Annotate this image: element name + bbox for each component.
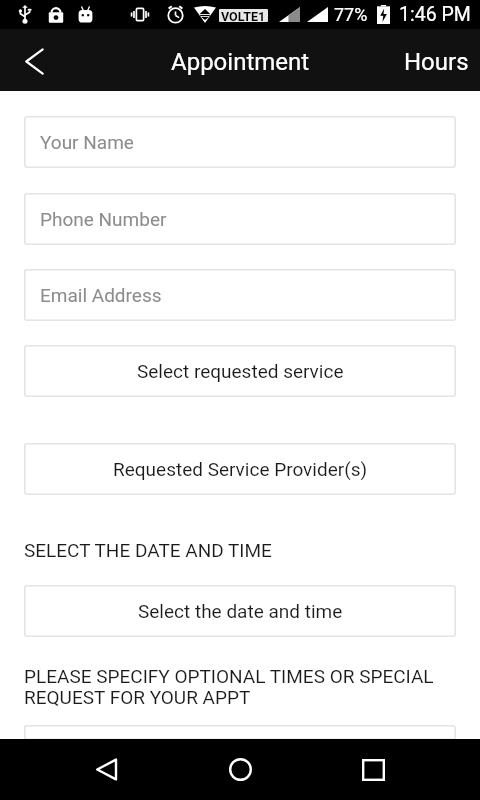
staticText: 77% xyxy=(334,4,368,25)
button[interactable]: Home xyxy=(210,739,271,800)
staticText: Requested Service Provider(s) xyxy=(113,458,368,480)
button[interactable]: Your Name xyxy=(24,116,456,168)
button[interactable] xyxy=(24,725,456,740)
button[interactable]: Select requested service xyxy=(24,345,456,397)
staticText: Select requested service xyxy=(137,360,344,382)
staticText: PLEASE SPECIFY OPTIONAL TIMES OR SPECIAL… xyxy=(24,665,434,708)
staticText: Hours xyxy=(404,48,469,76)
button[interactable]: Recent apps xyxy=(343,739,404,800)
button[interactable]: Requested Service Provider(s) xyxy=(24,443,456,495)
button[interactable]: Back xyxy=(6,33,62,89)
button[interactable]: Select the date and time xyxy=(24,585,456,637)
button[interactable]: Back xyxy=(76,739,137,800)
button[interactable]: Phone Number xyxy=(24,193,456,245)
staticText: 1:46 PM xyxy=(399,3,471,26)
staticText: Select the date and time xyxy=(138,600,343,622)
staticText: VOLTE1 xyxy=(221,9,266,22)
button[interactable]: Email Address xyxy=(24,269,456,321)
staticText: Email Address xyxy=(40,284,162,306)
staticText: Your Name xyxy=(40,131,134,153)
staticText: SELECT THE DATE AND TIME xyxy=(24,539,272,561)
button[interactable]: Hours xyxy=(386,29,480,91)
staticText: Phone Number xyxy=(40,208,167,230)
staticText: Appointment xyxy=(171,48,310,76)
